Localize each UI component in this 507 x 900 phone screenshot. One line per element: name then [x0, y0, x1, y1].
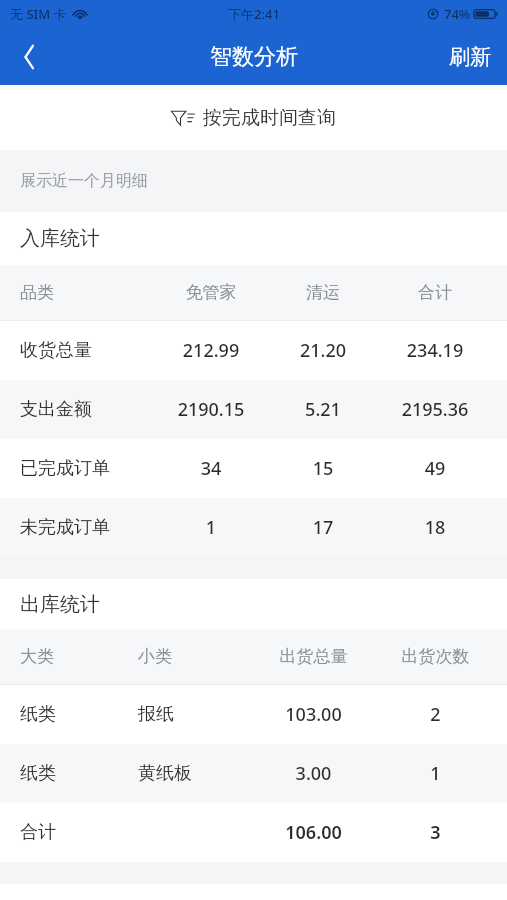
- staticText: 234.19: [375, 338, 495, 363]
- staticText: 收货总量: [20, 339, 151, 362]
- staticText: 智数分析: [210, 43, 298, 71]
- staticText: 纸类: [20, 703, 138, 726]
- staticText: 小类: [138, 646, 251, 667]
- staticText: 18: [375, 515, 495, 540]
- staticText: 已完成订单: [20, 457, 151, 480]
- staticText: 展示近一个月明细: [20, 171, 148, 191]
- staticText: 74%: [444, 5, 470, 23]
- staticText: 合计: [375, 282, 495, 303]
- staticText: 入库统计: [20, 226, 100, 251]
- staticText: 21.20: [271, 338, 375, 363]
- staticText: 免管家: [151, 282, 271, 303]
- button[interactable]: 刷新: [433, 28, 507, 85]
- staticText: 无 SIM 卡: [10, 5, 67, 23]
- staticText: 出货总量: [251, 646, 376, 667]
- staticText: 品类: [20, 282, 151, 303]
- staticText: 未完成订单: [20, 516, 151, 539]
- staticText: 106.00: [251, 820, 376, 845]
- staticText: 15: [271, 456, 375, 481]
- staticText: 2: [376, 702, 495, 727]
- staticText: 出货次数: [376, 646, 495, 667]
- staticText: 212.99: [151, 338, 271, 363]
- staticText: 3: [376, 820, 495, 845]
- staticText: 1: [376, 761, 495, 786]
- staticText: 17: [271, 515, 375, 540]
- staticText: 纸类: [20, 762, 138, 785]
- staticText: 大类: [20, 646, 138, 667]
- staticText: 2190.15: [151, 397, 271, 422]
- staticText: 按完成时间查询: [203, 106, 336, 130]
- staticText: 出库统计: [20, 592, 100, 617]
- staticText: 清运: [271, 282, 375, 303]
- staticText: 1: [151, 515, 271, 540]
- staticText: 黄纸板: [138, 762, 251, 785]
- staticText: 合计: [20, 821, 138, 844]
- staticText: 下午2:41: [228, 5, 280, 23]
- staticText: 刷新: [449, 44, 491, 70]
- staticText: 支出金额: [20, 398, 151, 421]
- button[interactable]: 返回: [0, 28, 58, 85]
- staticText: 3.00: [251, 761, 376, 786]
- staticText: 5.21: [271, 397, 375, 422]
- staticText: 34: [151, 456, 271, 481]
- staticText: 49: [375, 456, 495, 481]
- staticText: 103.00: [251, 702, 376, 727]
- staticText: 报纸: [138, 703, 251, 726]
- button[interactable]: 按完成时间查询: [0, 85, 507, 150]
- staticText: 2195.36: [375, 397, 495, 422]
